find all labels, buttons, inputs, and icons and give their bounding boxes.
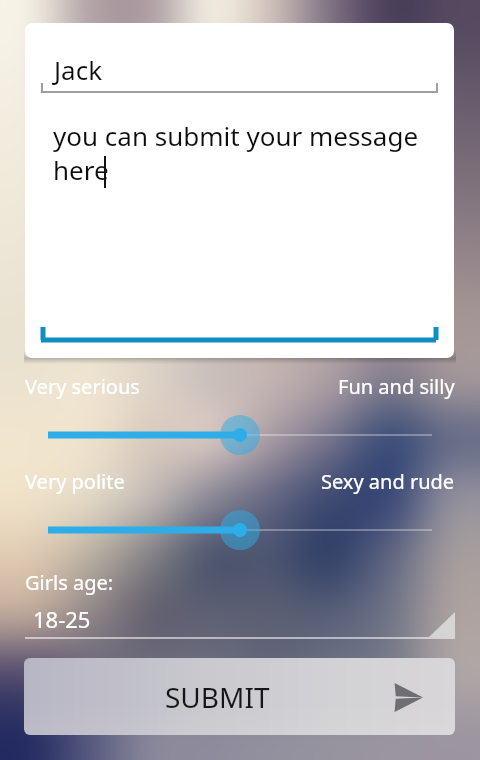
staticText: Very polite — [25, 468, 125, 495]
staticText: Jack — [54, 52, 103, 87]
staticText: Fun and silly — [338, 373, 455, 400]
staticText: 18-25 — [33, 604, 91, 634]
button[interactable]: 18-25 — [25, 604, 455, 640]
button[interactable]: Jack — [41, 38, 438, 93]
button[interactable]: Slider — [24, 411, 456, 459]
staticText: Girls age: — [25, 569, 114, 596]
button[interactable]: Slider — [24, 506, 456, 554]
staticText: Sexy and rude — [321, 468, 455, 495]
staticText: Very serious — [25, 373, 140, 400]
button[interactable]: you can submit your message here — [41, 118, 438, 341]
staticText: SUBMIT — [165, 678, 270, 716]
button[interactable]: SUBMIT — [24, 658, 455, 735]
staticText: you can submit your message here — [53, 118, 438, 187]
other: Send — [394, 683, 423, 712]
